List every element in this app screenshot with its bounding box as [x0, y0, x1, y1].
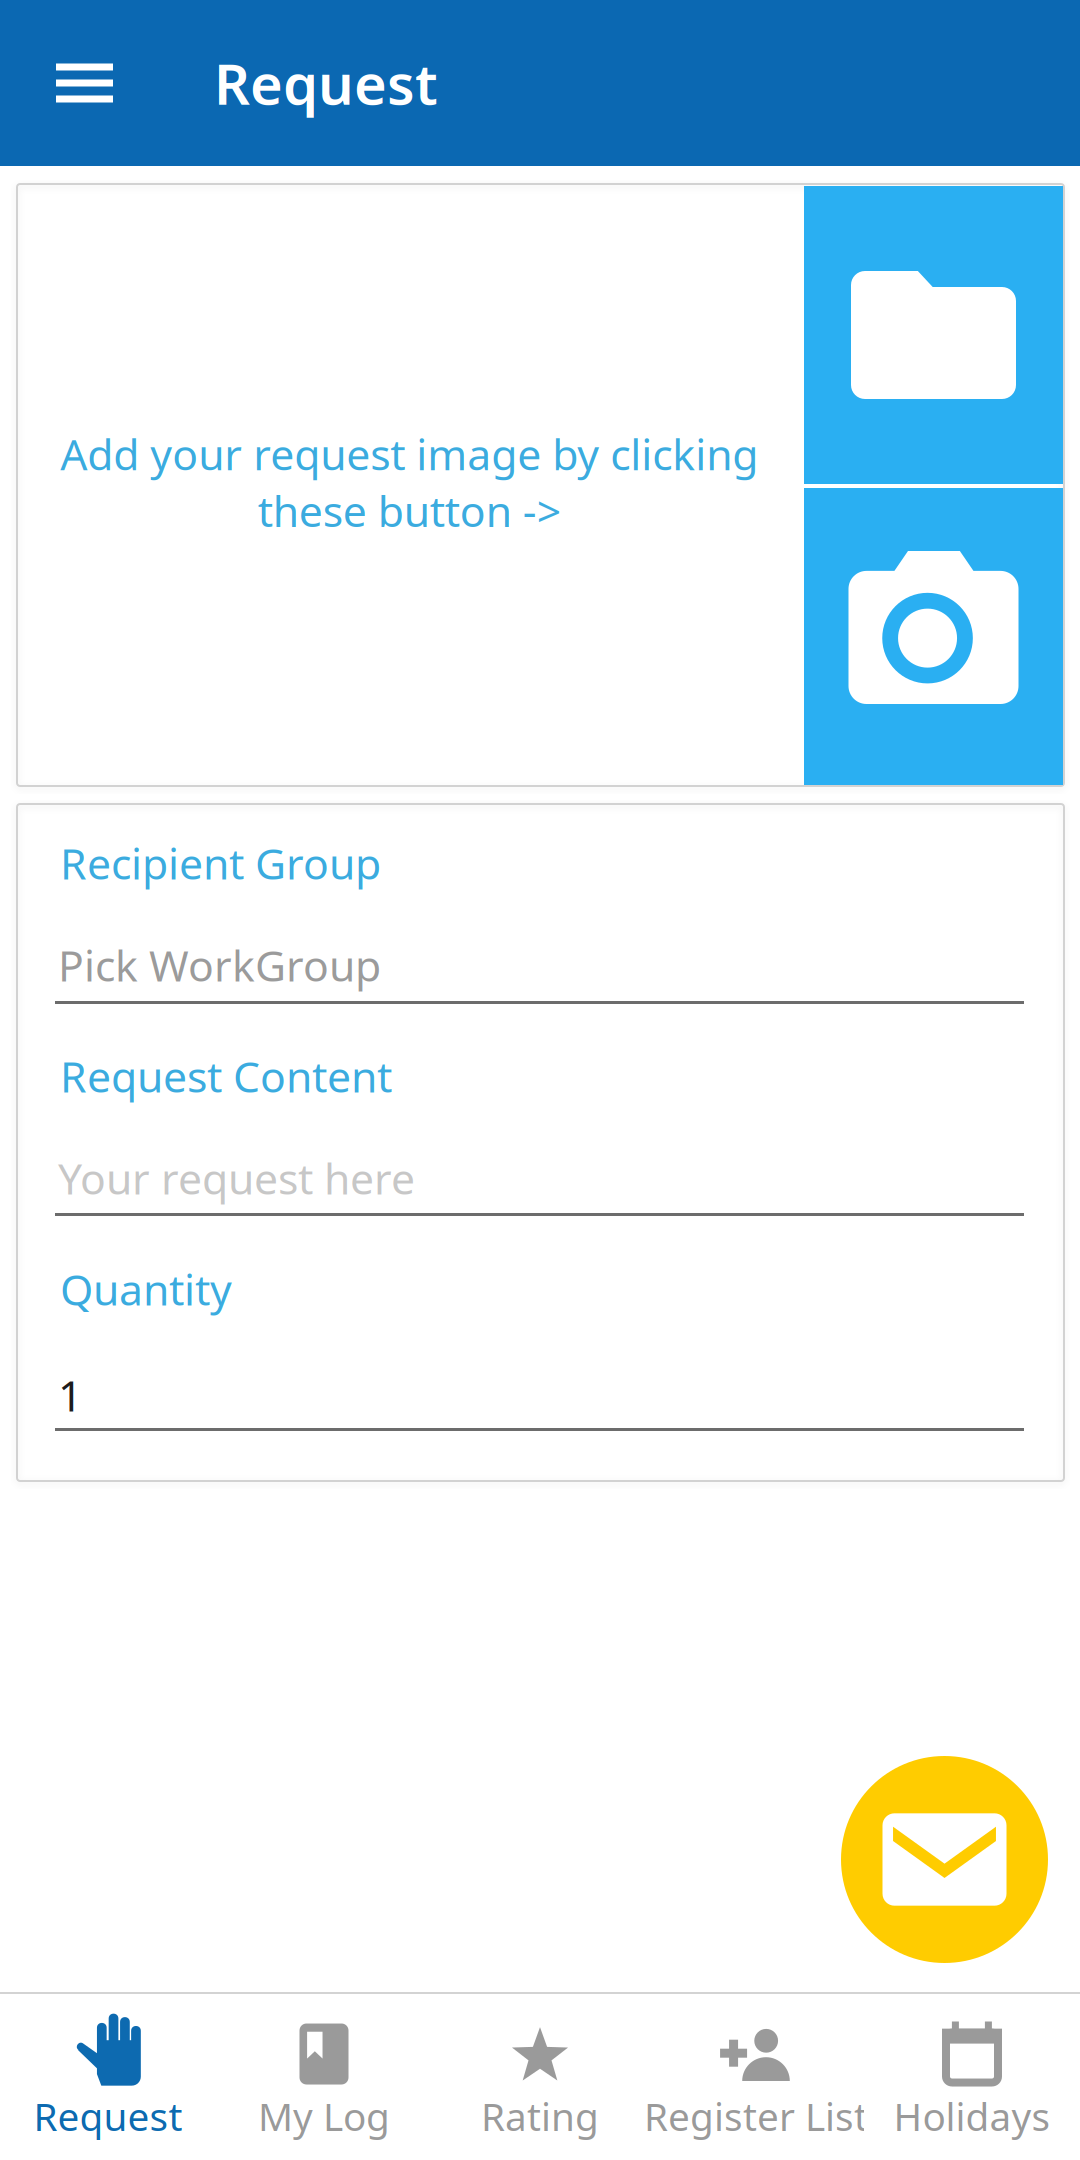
button[interactable]: 1 — [55, 1366, 1024, 1431]
staticText: Pick WorkGroup — [58, 937, 381, 993]
button[interactable]: Holidays — [864, 1994, 1080, 2160]
staticText: 1 — [58, 1367, 82, 1423]
button[interactable]: Request — [0, 1994, 216, 2160]
button[interactable]: Take photo with camera — [804, 488, 1063, 785]
button[interactable]: Your request here — [55, 1149, 1024, 1216]
staticText: Rating — [481, 2090, 599, 2142]
button[interactable]: My Log — [216, 1994, 432, 2160]
staticText: Recipient Group — [60, 835, 381, 891]
button[interactable]: Choose image from files — [804, 186, 1063, 484]
staticText: Your request here — [58, 1150, 415, 1206]
staticText: Holidays — [893, 2090, 1050, 2142]
button[interactable]: Menu — [28, 28, 141, 138]
staticText: My Log — [258, 2090, 390, 2142]
staticText: Request Content — [60, 1048, 392, 1104]
staticText: Add your request image by clicking these… — [60, 425, 758, 539]
staticText: Quantity — [60, 1261, 232, 1317]
staticText: Request — [33, 2090, 182, 2142]
staticText: Request — [214, 46, 438, 120]
button[interactable]: Register List — [648, 1994, 864, 2160]
button[interactable]: Rating — [432, 1994, 648, 2160]
staticText: Register List — [644, 2090, 868, 2142]
button[interactable]: Send request — [841, 1756, 1048, 1963]
button[interactable]: Pick WorkGroup — [55, 936, 1024, 1004]
